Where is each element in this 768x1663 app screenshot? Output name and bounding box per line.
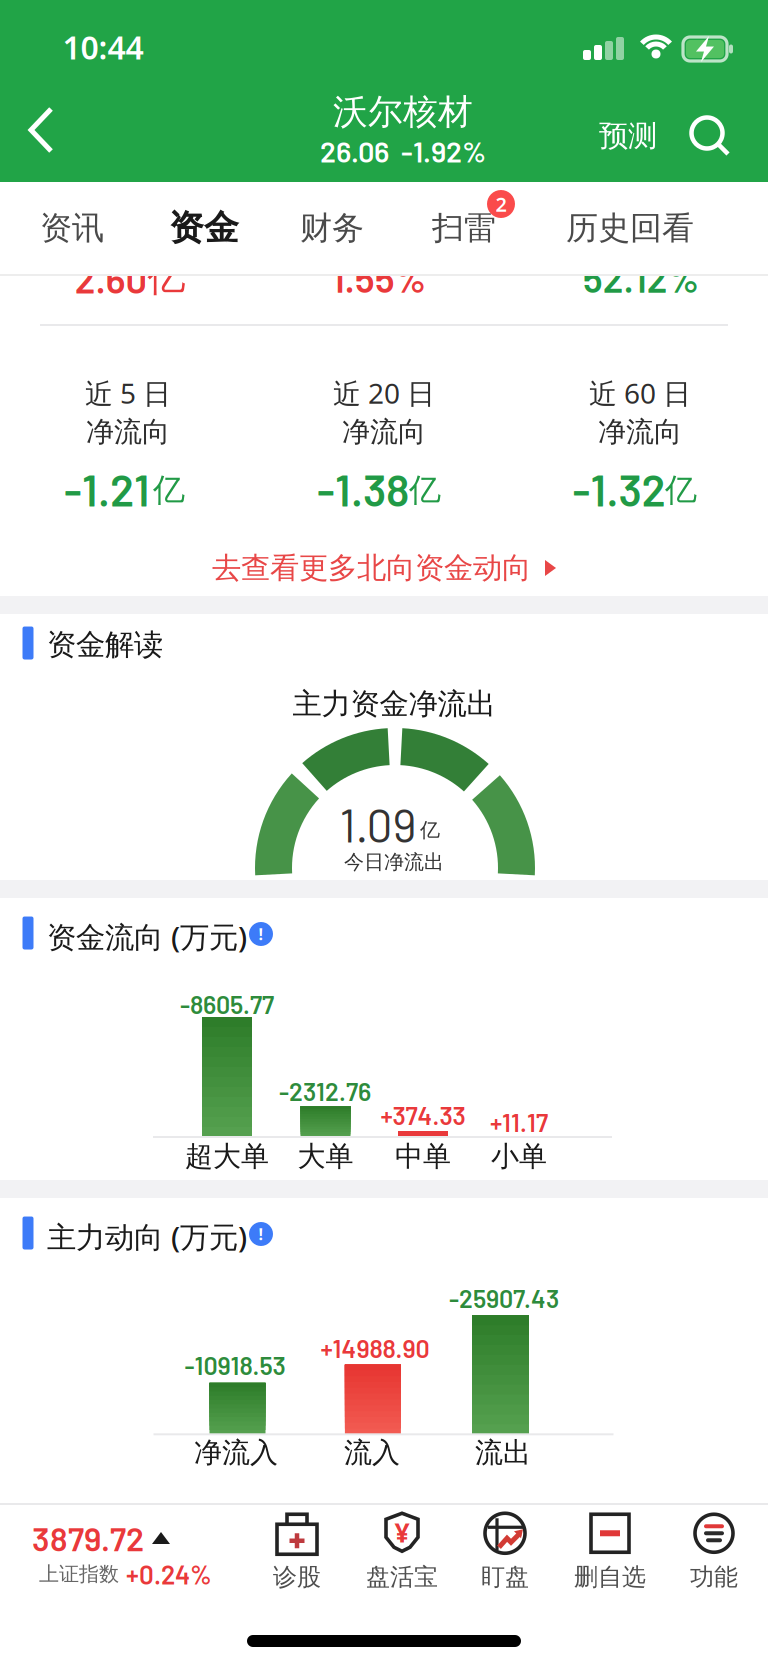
staticText: -1.32	[572, 463, 665, 515]
button[interactable]: 3879.72	[30, 1514, 220, 1588]
staticText: -25907.43	[449, 1283, 559, 1313]
staticText: -8605.77	[180, 989, 274, 1019]
staticText: 功能	[690, 1562, 738, 1592]
staticText: 资金解读	[47, 627, 163, 663]
staticText: !	[258, 923, 263, 945]
staticText: 近 60 日	[589, 374, 691, 412]
button[interactable]: 去查看更多北向资金动向	[212, 550, 556, 586]
staticText: 近 5 日	[85, 374, 171, 412]
staticText: 净流向	[86, 415, 170, 449]
button[interactable]: 预测	[593, 112, 663, 160]
staticText: 删自选	[574, 1562, 646, 1592]
staticText: 中单	[395, 1139, 451, 1174]
staticText: -1.92%	[401, 134, 486, 168]
staticText: +11.17	[490, 1107, 548, 1137]
staticText: 资金流向 (万元)	[47, 917, 247, 956]
staticText: 扫雷	[432, 208, 496, 248]
staticText: 2	[495, 191, 506, 217]
staticText: +14988.90	[320, 1333, 429, 1363]
staticText: 超大单	[185, 1139, 269, 1174]
button[interactable]: 扫雷	[432, 208, 496, 248]
staticText: 52.12%	[582, 255, 699, 300]
staticText: -1.21	[64, 463, 150, 515]
staticText: 沃尔核材	[333, 91, 473, 133]
staticText: 1.55%	[331, 255, 426, 300]
staticText: 今日净流出	[344, 850, 444, 874]
button[interactable]: 说明	[249, 1222, 273, 1246]
staticText: 净流向	[598, 415, 682, 449]
staticText: 净流入	[194, 1435, 278, 1470]
staticText: 盘活宝	[366, 1562, 438, 1592]
staticText: 净流向	[342, 415, 426, 449]
staticText: 流入	[344, 1435, 400, 1470]
button[interactable]: 历史回看	[566, 208, 694, 248]
button[interactable]: 删自选	[574, 1512, 646, 1592]
staticText: 大单	[297, 1139, 353, 1174]
staticText: 财务	[300, 208, 364, 248]
staticText: 亿	[153, 470, 185, 510]
button[interactable]: 盯盘	[481, 1512, 529, 1592]
staticText: 主力资金净流出	[292, 686, 495, 722]
staticText: 亿	[420, 818, 440, 842]
staticText: 亿	[665, 470, 697, 510]
staticText: 26.06	[320, 134, 389, 168]
staticText: 小单	[491, 1139, 547, 1174]
staticText: !	[258, 1223, 263, 1245]
button[interactable]: 功能	[690, 1512, 738, 1592]
staticText: 10:44	[62, 26, 143, 68]
staticText: +374.33	[380, 1100, 465, 1130]
staticText: 预测	[599, 118, 657, 154]
staticText: 3879.72	[32, 1518, 144, 1558]
button[interactable]: 资金	[169, 207, 239, 249]
staticText: -1.38	[317, 463, 409, 515]
staticText: 1.09	[339, 796, 416, 852]
staticText: 历史回看	[566, 208, 694, 248]
button[interactable]: Search	[687, 113, 731, 157]
button[interactable]: 财务	[300, 208, 364, 248]
staticText: 资金	[169, 207, 239, 249]
staticText: 2.60亿	[74, 254, 185, 301]
staticText: 主力动向 (万元)	[47, 1217, 247, 1256]
staticText: 盯盘	[481, 1562, 529, 1592]
button[interactable]: 资讯	[40, 208, 104, 248]
staticText: -10918.53	[184, 1350, 285, 1380]
staticText: 上证指数	[39, 1562, 119, 1586]
staticText: 资讯	[40, 208, 104, 248]
staticText: 近 20 日	[333, 374, 435, 412]
staticText: 亿	[409, 470, 441, 510]
button[interactable]: ¥	[366, 1512, 438, 1592]
staticText: 去查看更多北向资金动向	[212, 550, 531, 586]
button[interactable]: Back	[29, 89, 53, 171]
staticText: -2312.76	[279, 1076, 371, 1106]
staticText: +0.24%	[126, 1558, 212, 1590]
staticText: ¥	[394, 1515, 409, 1550]
staticText: 诊股	[273, 1562, 321, 1592]
staticText: 流出	[475, 1435, 531, 1470]
button[interactable]: 说明	[249, 922, 273, 946]
button[interactable]: 诊股	[273, 1512, 321, 1592]
